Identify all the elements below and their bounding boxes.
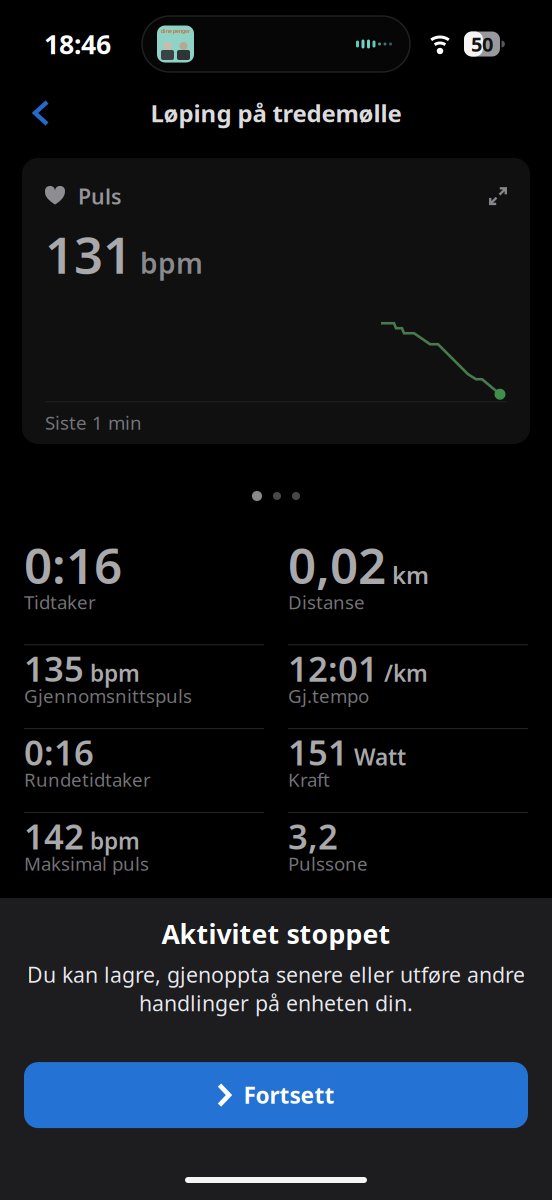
button[interactable]: Puls — [22, 158, 530, 444]
staticText: km — [392, 559, 429, 590]
staticText: Kraft — [288, 767, 330, 792]
staticText: Maksimal puls — [24, 851, 149, 876]
staticText: dine penger — [161, 27, 190, 35]
button[interactable]: Fortsett — [24, 1062, 528, 1128]
staticText: Tidtaker — [24, 589, 96, 614]
staticText: Rundetidtaker — [24, 767, 151, 792]
staticText: 18:46 — [44, 26, 111, 62]
staticText: Puls — [78, 182, 122, 210]
staticText: handlinger på enheten din. — [139, 989, 413, 1017]
staticText: bpm — [90, 826, 140, 856]
staticText: /km — [384, 658, 428, 688]
staticText: bpm — [90, 658, 140, 688]
staticText: 12:01 — [288, 645, 378, 691]
staticText: 131 — [45, 220, 132, 288]
staticText: 0:16 — [24, 729, 94, 775]
staticText: 50 — [471, 31, 493, 57]
staticText: Gjennomsnittspuls — [24, 683, 192, 708]
staticText: Watt — [354, 742, 406, 772]
staticText: Aktivitet stoppet — [161, 916, 390, 951]
staticText: Løping på tredemølle — [150, 97, 401, 129]
staticText: 135 — [24, 645, 84, 691]
staticText: Pulssone — [288, 851, 368, 876]
staticText: 0:16 — [24, 532, 122, 597]
staticText: 151 — [288, 729, 348, 775]
staticText: bpm — [140, 244, 203, 281]
staticText: 3,2 — [288, 813, 338, 859]
staticText: Du kan lagre, gjenoppta senere eller utf… — [27, 960, 525, 989]
staticText: Siste 1 min — [45, 410, 142, 435]
staticText: 142 — [24, 813, 84, 859]
staticText: Gj.tempo — [288, 683, 369, 708]
staticText: 0,02 — [288, 532, 386, 597]
staticText: Fortsett — [243, 1080, 334, 1110]
button[interactable]: Tilbake — [0, 92, 49, 133]
staticText: Distanse — [288, 589, 365, 614]
